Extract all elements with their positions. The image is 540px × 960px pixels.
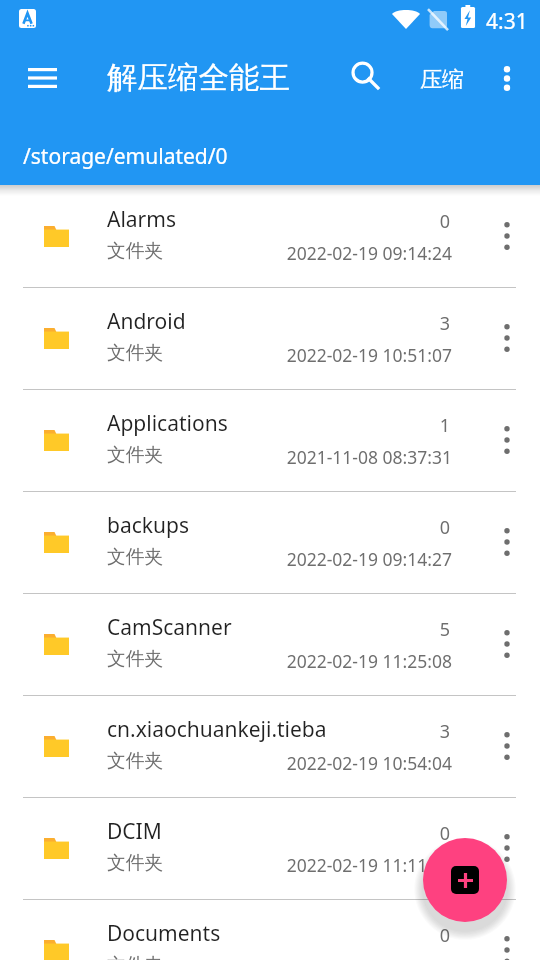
button[interactable]: More options for Documents — [483, 899, 531, 960]
staticText: cn.xiaochuankeji.tieba — [107, 715, 327, 744]
button[interactable]: More options — [485, 54, 529, 102]
button[interactable]: Open navigation menu — [6, 50, 78, 105]
button[interactable]: 压缩 — [408, 57, 476, 103]
button[interactable]: backups — [0, 491, 540, 593]
staticText: Android — [107, 307, 186, 336]
button[interactable]: Documents — [0, 899, 540, 960]
button[interactable]: More options for cn.xiaochuankeji.tieba — [483, 695, 531, 797]
staticText: 文件夹 — [107, 851, 164, 875]
staticText: 1 — [390, 413, 450, 438]
button[interactable]: Create new archive — [423, 838, 507, 922]
staticText: 3 — [390, 311, 450, 336]
staticText: /storage/emulated/0 — [23, 142, 228, 171]
staticText: DCIM — [107, 817, 162, 846]
button[interactable]: More options for backups — [483, 491, 531, 593]
button[interactable]: More options for Android — [483, 287, 531, 389]
staticText: 2022-02-19 09:14:27 — [250, 547, 452, 571]
staticText: 文件夹 — [107, 953, 164, 960]
button[interactable]: More options for Applications — [483, 389, 531, 491]
button[interactable]: Search — [343, 53, 387, 97]
staticText: 文件夹 — [107, 341, 164, 365]
staticText: 解压缩全能王 — [107, 59, 290, 97]
staticText: 压缩 — [420, 66, 464, 94]
button[interactable]: More options for DCIM — [483, 797, 531, 899]
button[interactable]: cn.xiaochuankeji.tieba — [0, 695, 540, 797]
staticText: Applications — [107, 409, 228, 438]
staticText: 2022-02-19 11:25:08 — [250, 649, 452, 673]
button[interactable]: Applications — [0, 389, 540, 491]
staticText: backups — [107, 511, 189, 540]
staticText: 2021-11-08 08:37:31 — [250, 445, 452, 469]
staticText: CamScanner — [107, 613, 232, 642]
staticText: 4:31 — [486, 7, 528, 36]
staticText: 2022-02-19 11:11:38 — [250, 853, 452, 877]
staticText: 0 — [390, 821, 450, 846]
button[interactable]: More options for CamScanner — [483, 593, 531, 695]
staticText: 3 — [390, 719, 450, 744]
staticText: 文件夹 — [107, 647, 164, 671]
staticText: 文件夹 — [107, 749, 164, 773]
staticText: 0 — [390, 209, 450, 234]
button[interactable]: More options for Alarms — [483, 185, 531, 287]
button[interactable]: Android — [0, 287, 540, 389]
staticText: 文件夹 — [107, 545, 164, 569]
button[interactable]: Alarms — [0, 185, 540, 287]
staticText: 文件夹 — [107, 443, 164, 467]
staticText: Documents — [107, 919, 221, 948]
button[interactable]: CamScanner — [0, 593, 540, 695]
staticText: 2022-02-19 09:14:24 — [250, 241, 452, 265]
staticText: 0 — [390, 923, 450, 948]
staticText: 2022-02-19 10:54:04 — [250, 751, 452, 775]
staticText: 5 — [390, 617, 450, 642]
button[interactable]: /storage/emulated/0 — [0, 114, 540, 162]
staticText: 0 — [390, 515, 450, 540]
button[interactable]: DCIM — [0, 797, 540, 899]
staticText: 文件夹 — [107, 239, 164, 263]
staticText: 2022-02-19 10:51:07 — [250, 343, 452, 367]
staticText: Alarms — [107, 205, 176, 234]
